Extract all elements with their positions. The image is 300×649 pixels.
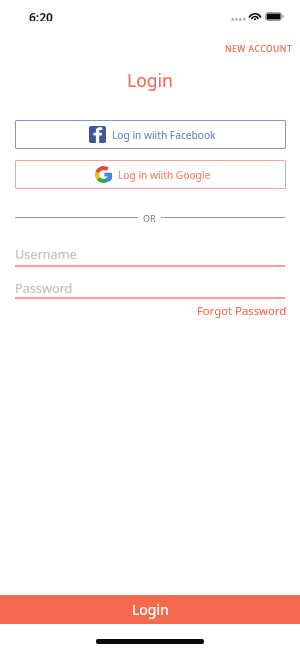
staticText: Log in wiith Google xyxy=(118,168,211,182)
staticText: Forgot Password xyxy=(197,303,287,318)
button[interactable]: NEW ACCOUNT xyxy=(215,40,300,58)
button[interactable]: Log in wiith Google xyxy=(15,160,286,189)
button[interactable]: Forgot Password xyxy=(197,303,300,318)
button[interactable]: Log in wiith Facebook xyxy=(15,120,286,149)
button[interactable]: Login xyxy=(0,595,300,624)
staticText: Login xyxy=(127,68,173,92)
staticText: NEW ACCOUNT xyxy=(225,43,293,55)
staticText: Password xyxy=(15,279,73,296)
staticText: Log in wiith Facebook xyxy=(112,128,216,142)
staticText: Login xyxy=(132,600,169,619)
staticText: 6:20 xyxy=(29,9,53,21)
button[interactable]: Username xyxy=(15,245,285,267)
staticText: Username xyxy=(15,245,77,262)
button[interactable]: Password xyxy=(15,279,285,299)
staticText: OR xyxy=(143,212,156,224)
